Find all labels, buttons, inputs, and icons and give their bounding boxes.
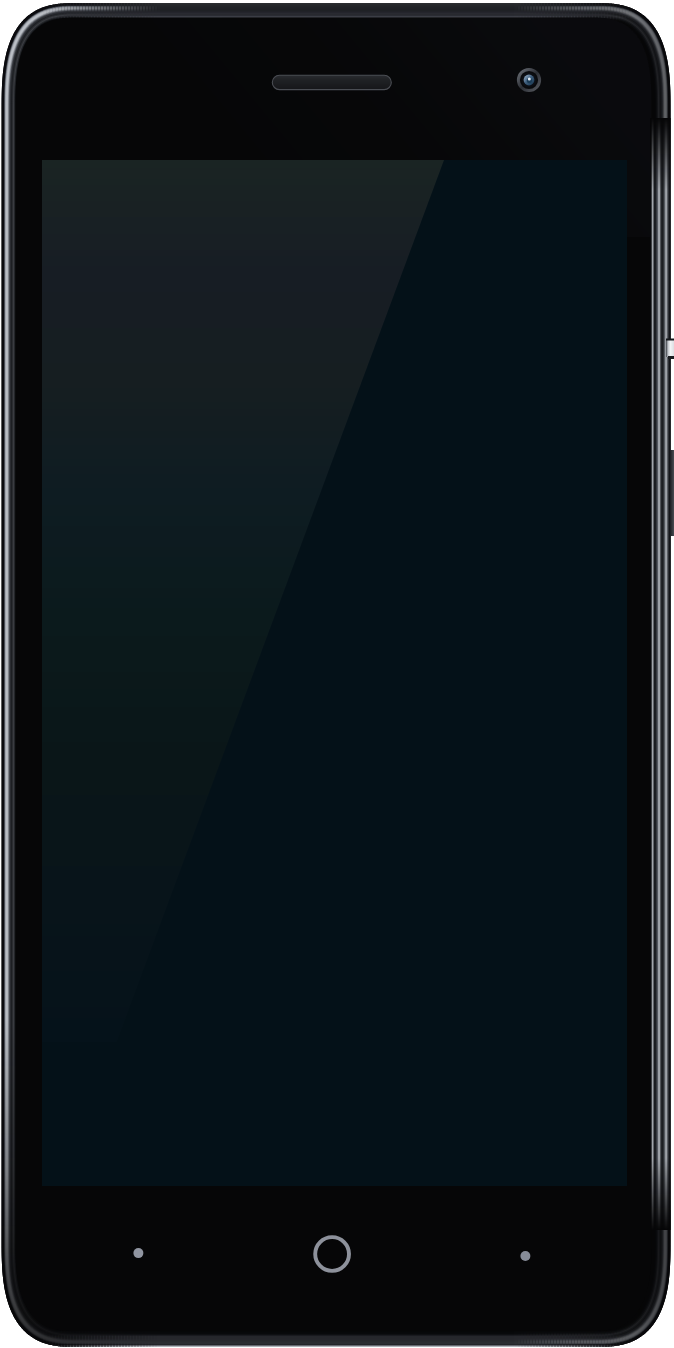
button[interactable]: Smartphone device with the screen off: [0, 0, 674, 1348]
